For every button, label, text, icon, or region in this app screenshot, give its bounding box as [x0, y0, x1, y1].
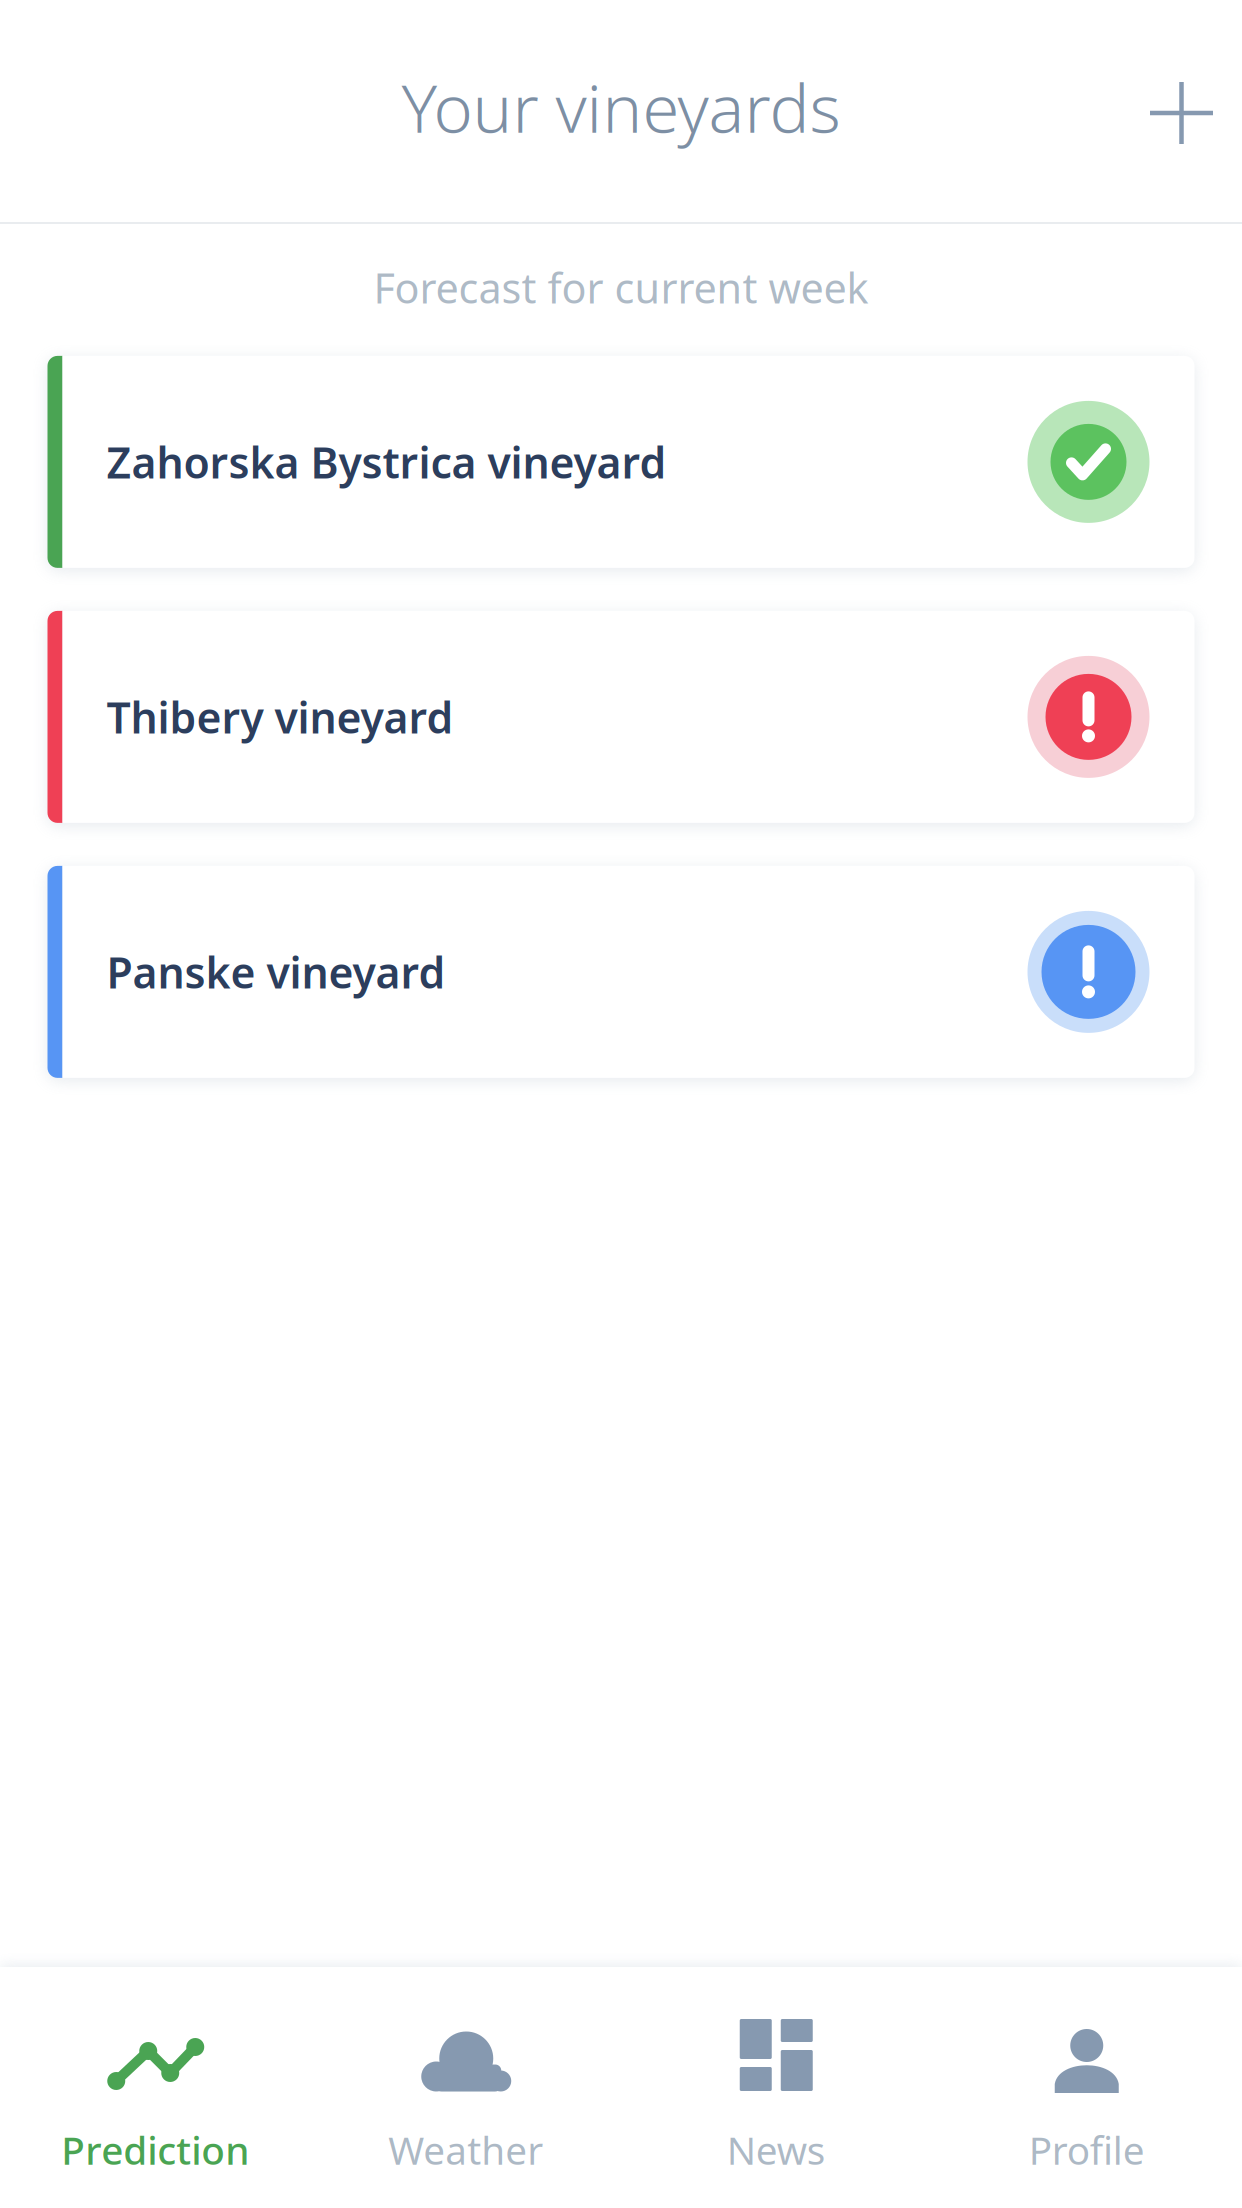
staticText: Zahorska Bystrica vineyard	[106, 434, 666, 490]
staticText: Weather	[388, 2124, 543, 2175]
staticText: Thibery vineyard	[106, 689, 453, 745]
button[interactable]: Thibery vineyard	[47, 611, 1194, 823]
button[interactable]: Profile	[931, 1967, 1242, 2208]
button[interactable]: Zahorska Bystrica vineyard	[47, 356, 1194, 568]
button[interactable]: Prediction	[0, 1967, 310, 2208]
staticText: Panske vineyard	[106, 944, 445, 1000]
button[interactable]: News	[621, 1967, 931, 2208]
staticText: News	[727, 2124, 826, 2175]
button[interactable]: Panske vineyard	[47, 866, 1194, 1078]
staticText: Your vineyards	[401, 63, 840, 151]
staticText: Profile	[1029, 2124, 1145, 2175]
button[interactable]: Add vineyard	[1120, 49, 1242, 173]
staticText: Prediction	[61, 2124, 249, 2175]
staticText: Forecast for current week	[373, 260, 868, 315]
button[interactable]: Weather	[310, 1967, 621, 2208]
